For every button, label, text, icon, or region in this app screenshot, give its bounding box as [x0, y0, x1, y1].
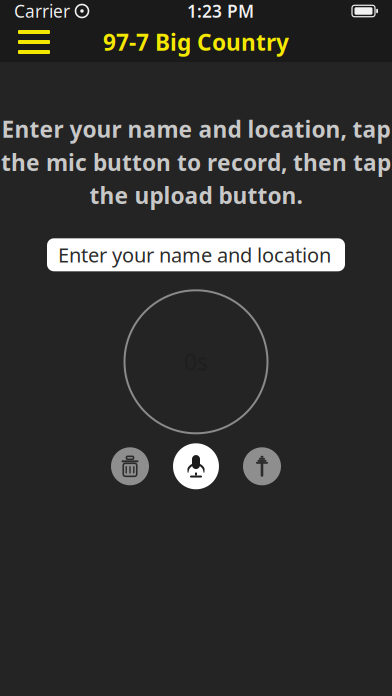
staticText: 97-7 Big Country	[103, 27, 289, 57]
button[interactable]: Record	[163, 440, 229, 492]
staticText: 1:23 PM	[187, 0, 254, 22]
button[interactable]: Upload recording	[229, 440, 295, 492]
button[interactable]: Enter your name and location	[47, 238, 345, 271]
staticText: the upload button.	[89, 180, 302, 210]
staticText: Enter your name and location, tap	[1, 114, 390, 144]
button[interactable]: Delete recording	[97, 440, 163, 492]
staticText: Carrier	[14, 0, 70, 22]
button[interactable]: Menu	[12, 22, 56, 62]
staticText: the mic button to record, then tap	[1, 147, 391, 177]
staticText: Enter your name and location	[58, 241, 331, 268]
